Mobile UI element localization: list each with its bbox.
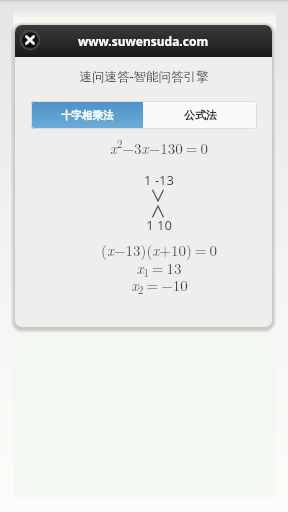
staticText: (x−13)(x+10) = 0 [101, 239, 217, 260]
button[interactable]: Close [19, 29, 41, 51]
staticText: 十字相乘法 [61, 109, 114, 122]
button[interactable]: 公式法 [143, 101, 257, 129]
button[interactable]: 十字相乘法 [31, 101, 143, 129]
staticText: x1 = 13 [136, 257, 182, 280]
staticText: 1 10 [146, 216, 172, 234]
staticText: 公式法 [184, 108, 217, 122]
staticText: x2 = −10 [131, 274, 188, 297]
staticText: www.suwensuda.com [78, 33, 209, 49]
staticText: 速问速答-智能问答引擎 [79, 68, 209, 85]
staticText: x2−3x−130 = 0 [110, 136, 208, 158]
staticText: 1 -13 [144, 171, 174, 189]
